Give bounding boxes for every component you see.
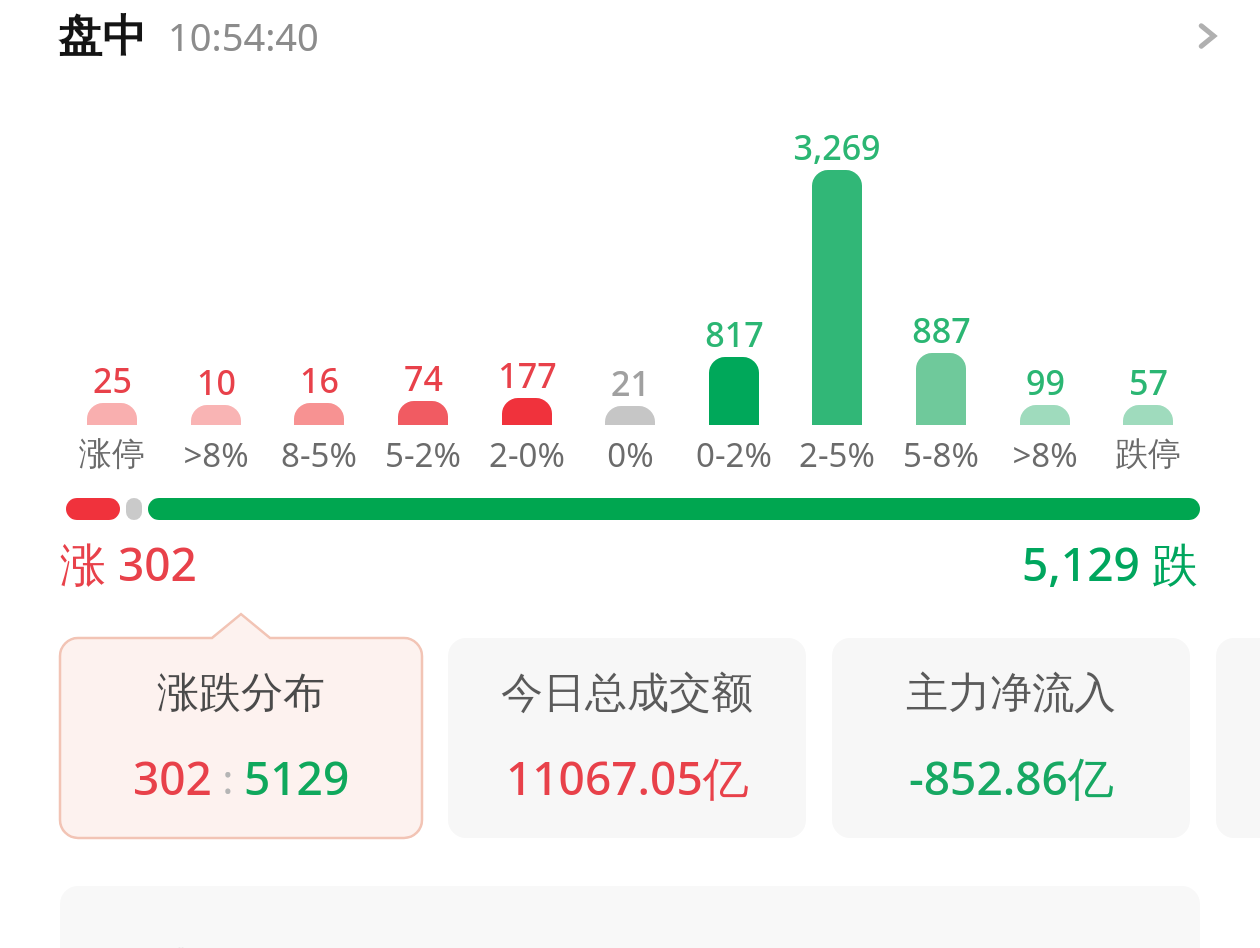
- staticText: 177: [498, 352, 557, 398]
- staticText: 5-2%: [385, 432, 461, 476]
- staticText: 跌停: [1115, 433, 1181, 475]
- staticText: 887: [912, 307, 971, 353]
- staticText: 25: [93, 357, 132, 403]
- button[interactable]: 今日总成交额: [448, 638, 806, 838]
- staticText: 16: [300, 357, 339, 403]
- button[interactable]: 盘中: [0, 0, 1260, 72]
- other: 查看详情: [1180, 9, 1234, 63]
- staticText: :: [212, 751, 244, 805]
- staticText: 10:54:40: [168, 10, 319, 62]
- staticText: 涨停: [79, 433, 145, 475]
- staticText: 今日总成交额: [501, 667, 753, 720]
- staticText: 11067.05亿: [506, 746, 749, 809]
- staticText: 8-5%: [281, 432, 357, 476]
- staticText: 57: [1129, 359, 1168, 405]
- staticText: >8%: [183, 432, 249, 476]
- staticText: 817: [705, 311, 764, 357]
- staticText: 涨跌分布: [157, 667, 325, 720]
- staticText: 21: [611, 360, 650, 406]
- staticText: 5-8%: [903, 432, 979, 476]
- staticText: 主力净流入: [906, 667, 1116, 720]
- staticText: 2-0%: [489, 432, 565, 476]
- staticText: -852.86亿: [909, 746, 1114, 809]
- staticText: 10: [197, 359, 236, 405]
- button[interactable]: 主力净流入: [832, 638, 1190, 838]
- staticText: 74: [404, 355, 443, 401]
- staticText: 302: [133, 746, 212, 809]
- staticText: 2-5%: [799, 432, 875, 476]
- staticText: >8%: [1012, 432, 1078, 476]
- button[interactable]: 涨跌分布: [60, 614, 422, 838]
- staticText: 5129: [244, 746, 350, 809]
- staticText: 3,269: [793, 124, 881, 170]
- staticText: 0-2%: [696, 432, 772, 476]
- staticText: 涨 302: [60, 532, 197, 594]
- staticText: 0%: [607, 432, 654, 476]
- staticText: 5,129 跌: [1022, 532, 1198, 594]
- staticText: 99: [1026, 359, 1065, 405]
- staticText: 盘中: [58, 9, 146, 64]
